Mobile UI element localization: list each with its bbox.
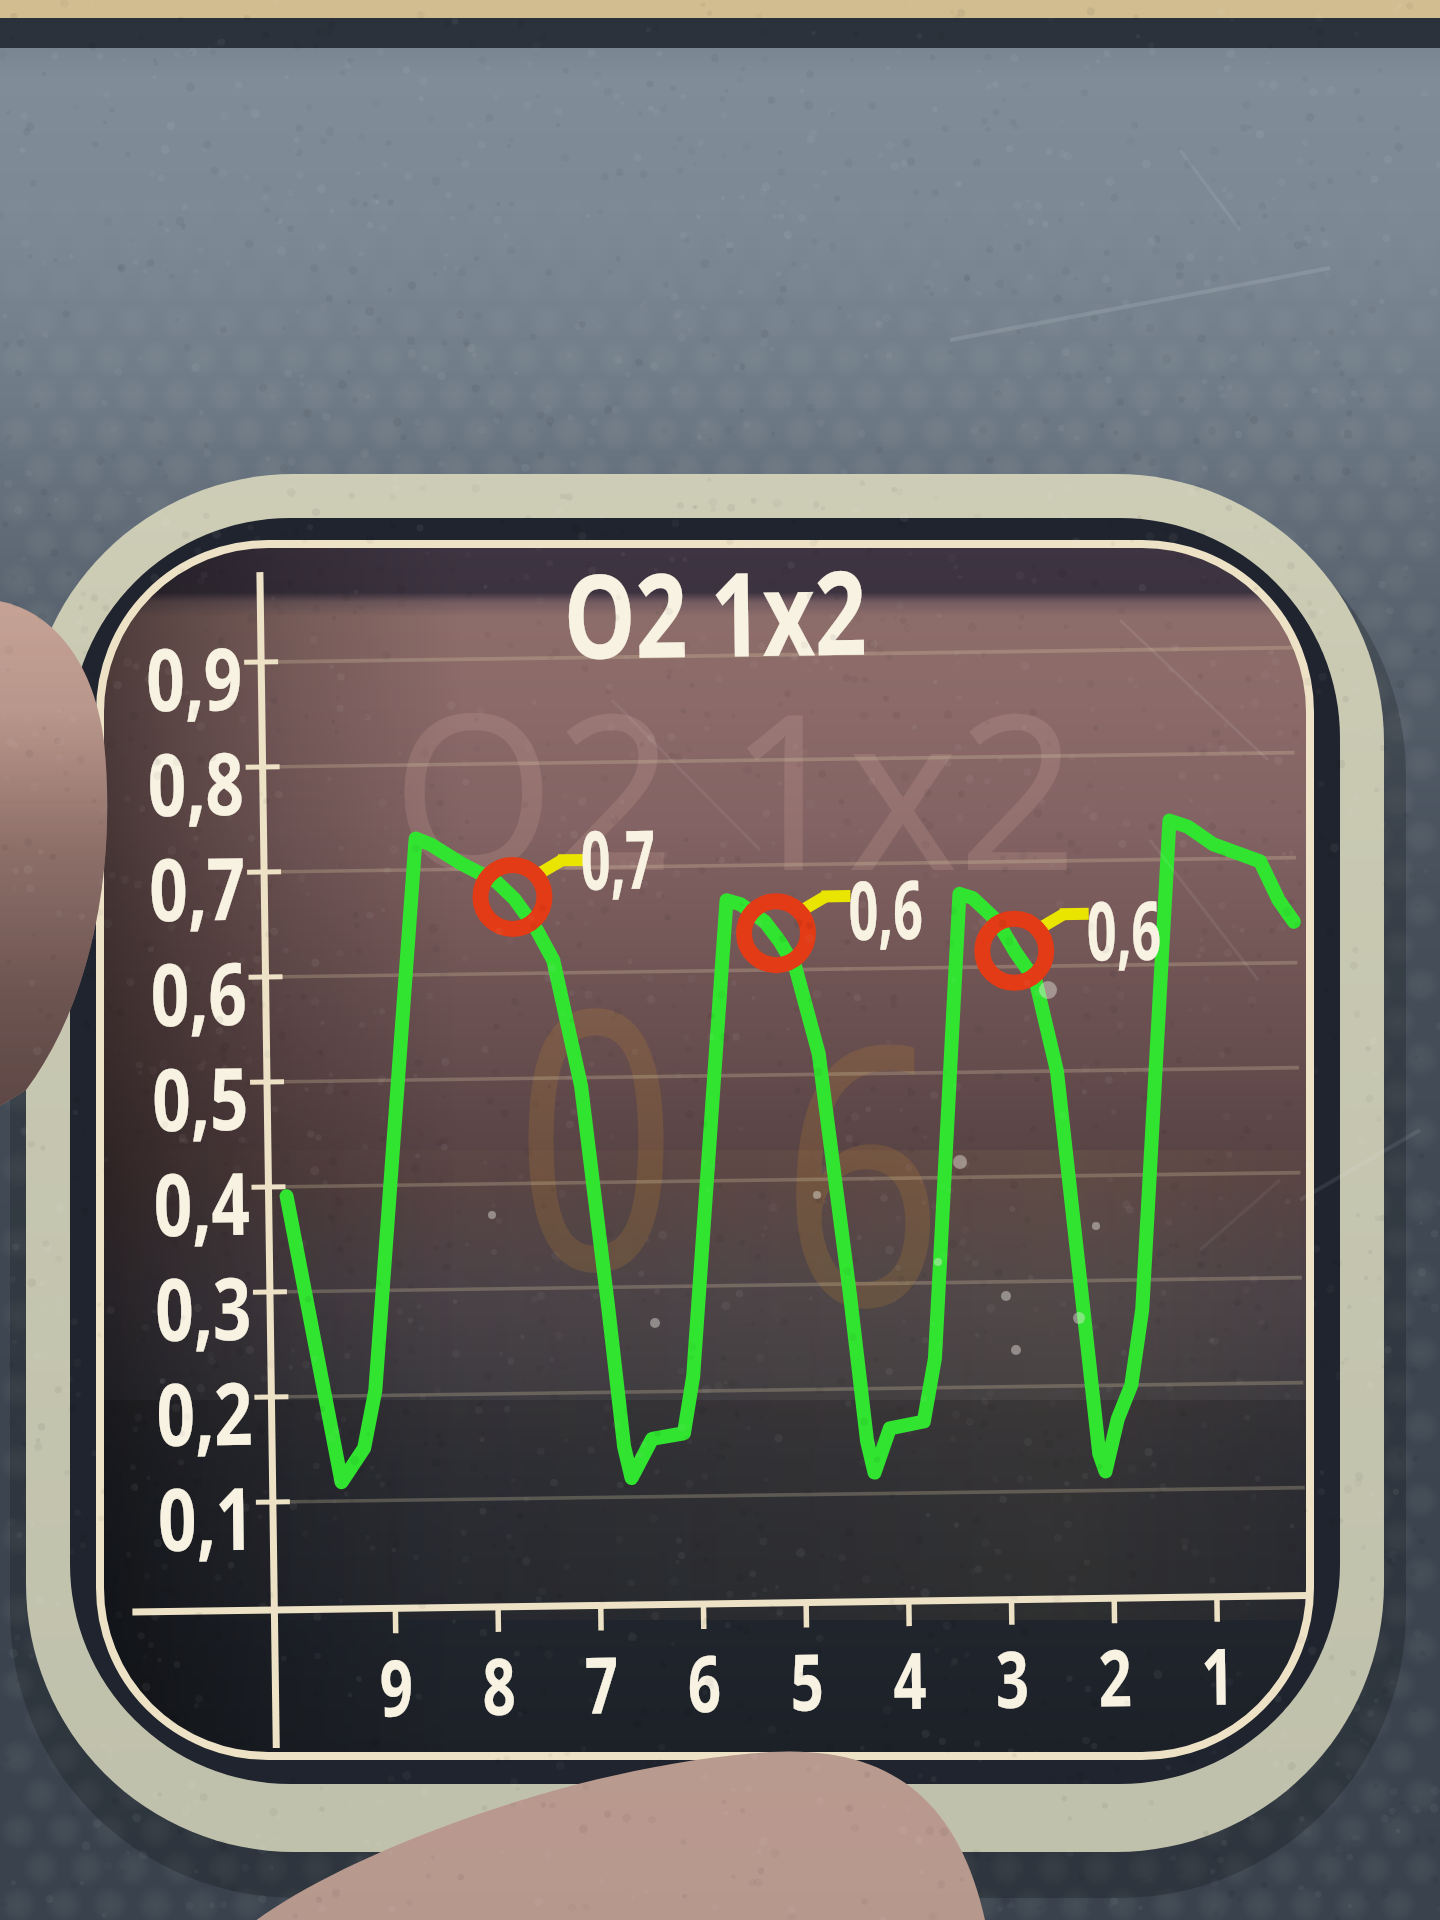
button[interactable]: O2 sensor waveform graph	[0, 0, 1440, 1920]
